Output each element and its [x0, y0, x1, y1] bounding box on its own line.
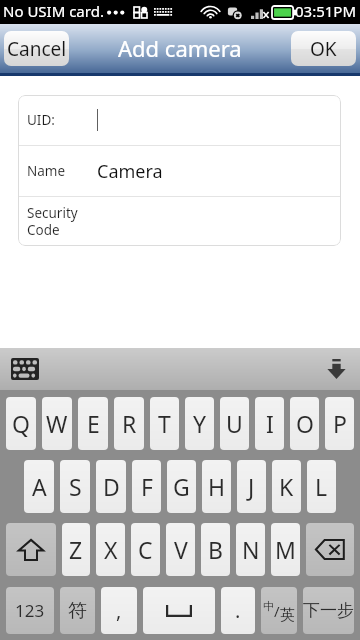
- staticText: Y: [193, 408, 207, 439]
- staticText: O: [296, 408, 314, 439]
- button[interactable]: E: [78, 397, 108, 450]
- button[interactable]: N: [236, 523, 265, 576]
- button[interactable]: M: [271, 523, 300, 576]
- staticText: X: [104, 534, 118, 565]
- staticText: Camera: [97, 159, 163, 184]
- button[interactable]: Space: [143, 587, 215, 634]
- button[interactable]: T: [150, 397, 179, 450]
- staticText: 03:51PM: [295, 1, 357, 21]
- staticText: W: [46, 408, 68, 439]
- staticText: B: [208, 534, 223, 565]
- staticText: V: [174, 534, 188, 565]
- staticText: Security Code: [27, 204, 97, 239]
- button[interactable]: Y: [185, 397, 214, 450]
- staticText: P: [333, 408, 347, 439]
- staticText: UID:: [27, 111, 97, 129]
- staticText: I: [266, 408, 274, 439]
- staticText: U: [226, 408, 243, 439]
- button[interactable]: Cancel: [4, 31, 69, 66]
- button[interactable]: UID:: [18, 95, 341, 145]
- button[interactable]: U: [220, 397, 249, 450]
- button[interactable]: OK: [291, 31, 356, 66]
- button[interactable]: S: [60, 460, 90, 513]
- staticText: G: [173, 471, 190, 502]
- staticText: No USIM card.: [3, 1, 104, 21]
- button[interactable]: G: [167, 460, 196, 513]
- button[interactable]: I: [255, 397, 284, 450]
- staticText: D: [103, 471, 120, 502]
- button[interactable]: X: [96, 523, 125, 576]
- staticText: OK: [310, 36, 337, 62]
- button[interactable]: Shift: [6, 523, 56, 576]
- staticText: Cancel: [7, 36, 67, 62]
- button[interactable]: A: [24, 460, 54, 513]
- button[interactable]: K: [272, 460, 301, 513]
- button[interactable]: Choose input method: [8, 352, 42, 386]
- button[interactable]: C: [131, 523, 160, 576]
- button[interactable]: 下一步: [303, 587, 354, 634]
- staticText: Name: [27, 162, 97, 180]
- button[interactable]: 123: [6, 587, 54, 634]
- staticText: A: [32, 471, 47, 502]
- button[interactable]: H: [202, 460, 231, 513]
- staticText: ,: [116, 597, 122, 624]
- button[interactable]: Z: [62, 523, 90, 576]
- staticText: .: [235, 597, 241, 624]
- staticText: F: [141, 471, 153, 502]
- button[interactable]: P: [325, 397, 354, 450]
- button[interactable]: Chinese English toggle: [261, 587, 297, 634]
- staticText: 英: [280, 606, 295, 625]
- button[interactable]: W: [42, 397, 72, 450]
- staticText: T: [158, 408, 171, 439]
- staticText: S: [69, 471, 82, 502]
- staticText: Z: [69, 534, 83, 565]
- button[interactable]: V: [166, 523, 195, 576]
- staticText: K: [279, 471, 294, 502]
- staticText: Add camera: [118, 33, 242, 63]
- button[interactable]: L: [307, 460, 336, 513]
- staticText: N: [242, 534, 260, 565]
- button[interactable]: Hide keyboard: [319, 352, 353, 386]
- button[interactable]: B: [201, 523, 230, 576]
- button[interactable]: ,: [101, 587, 137, 634]
- button[interactable]: 符: [60, 587, 95, 634]
- button[interactable]: .: [221, 587, 255, 634]
- staticText: 符: [68, 599, 87, 623]
- staticText: /: [274, 601, 280, 621]
- staticText: 下一步: [303, 600, 354, 621]
- button[interactable]: D: [96, 460, 126, 513]
- staticText: C: [138, 534, 153, 565]
- staticText: Q: [12, 408, 30, 439]
- staticText: 中: [263, 599, 274, 613]
- staticText: R: [122, 408, 137, 439]
- staticText: L: [315, 471, 328, 502]
- button[interactable]: Q: [6, 397, 36, 450]
- staticText: M: [275, 534, 296, 565]
- button[interactable]: J: [237, 460, 266, 513]
- button[interactable]: F: [132, 460, 161, 513]
- staticText: J: [248, 471, 255, 502]
- staticText: H: [208, 471, 226, 502]
- button[interactable]: R: [114, 397, 144, 450]
- button[interactable]: Backspace: [306, 523, 354, 576]
- button[interactable]: Name: [18, 146, 341, 196]
- staticText: 123: [15, 599, 45, 622]
- button[interactable]: O: [290, 397, 319, 450]
- button[interactable]: Security Code: [18, 197, 341, 246]
- staticText: E: [87, 408, 100, 439]
